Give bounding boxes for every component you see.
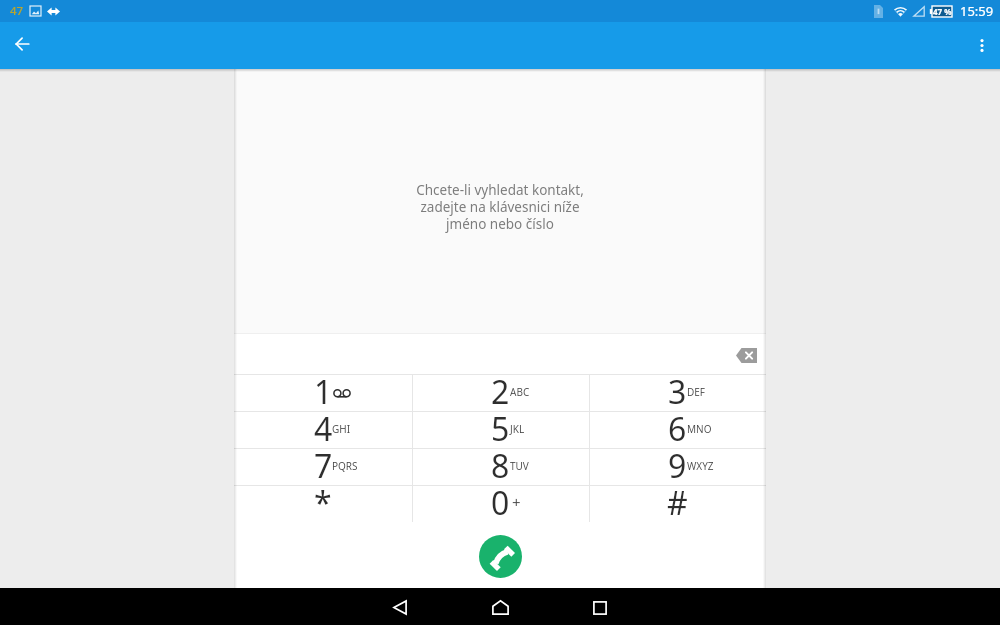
button[interactable]: 7 [234,449,412,485]
staticText: 4 [314,407,333,443]
staticText: + [512,492,521,512]
staticText: TUV [510,459,529,473]
staticText: 0 [491,481,510,517]
staticText: 47 [10,3,24,19]
button[interactable]: 9 [589,449,766,485]
staticText: # [667,481,688,517]
button[interactable]: More options [964,25,1000,67]
staticText: GHI [332,422,351,436]
staticText: ABC [510,385,530,399]
button[interactable]: * [234,486,412,522]
button[interactable]: 0 [412,486,589,522]
staticText: 1 [314,370,333,406]
staticText: 6 [668,407,687,443]
staticText: JKL [510,422,525,436]
button[interactable]: Call [479,535,522,578]
button[interactable]: 4 [234,412,412,448]
button[interactable]: 6 [589,412,766,448]
button[interactable]: 3 [589,375,766,411]
staticText: 47 % [933,6,952,17]
button[interactable]: 1 [234,375,412,411]
staticText: * [314,481,332,517]
staticText: 8 [491,444,510,480]
button[interactable]: Home [450,588,550,625]
staticText: 7 [314,444,333,480]
staticText: WXYZ [687,459,714,473]
staticText: PQRS [332,459,358,473]
button[interactable]: Backspace [728,337,764,373]
staticText: 9 [668,444,687,480]
button[interactable]: Recents [550,588,650,625]
button[interactable]: Back [350,588,450,625]
button[interactable]: # [589,486,766,522]
staticText: 5 [491,407,510,443]
staticText: 15:59 [960,2,994,20]
button[interactable]: Back [1,25,43,67]
button[interactable]: 5 [412,412,589,448]
staticText: MNO [687,422,712,436]
staticText: 3 [668,370,687,406]
button[interactable]: 2 [412,375,589,411]
staticText: 2 [491,370,510,406]
staticText: DEF [687,385,706,399]
button[interactable]: 8 [412,449,589,485]
staticText: Chcete-li vyhledat kontakt, zadejte na k… [416,181,584,233]
